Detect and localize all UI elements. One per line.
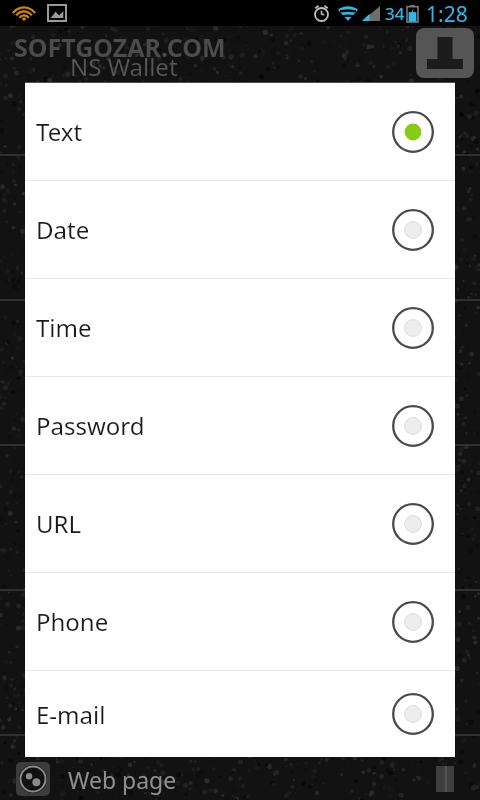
staticText: Text [36,115,83,148]
button[interactable]: E-mail [25,671,455,757]
staticText: 34 [385,2,405,25]
staticText: 1:28 [426,0,468,26]
staticText: URL [36,507,82,540]
staticText: Phone [36,605,109,638]
staticText: Date [36,213,90,246]
staticText: Password [36,409,145,442]
staticText: SOFTGOZAR.COM [14,30,226,64]
staticText: NS Wallet [70,50,178,83]
staticText: Web page [68,764,177,795]
staticText: Time [36,311,92,344]
button[interactable]: Phone [25,573,455,670]
button[interactable]: URL [25,475,455,572]
button[interactable]: Password [25,377,455,474]
button[interactable]: Date [25,181,455,278]
staticText: E-mail [36,698,106,731]
button[interactable]: Web page [0,758,480,800]
button[interactable]: Time [25,279,455,376]
button[interactable]: Text [25,83,455,180]
button[interactable]: Add [416,28,474,78]
